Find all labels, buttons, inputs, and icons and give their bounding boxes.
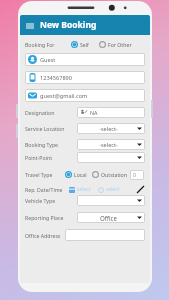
button[interactable]: -select- [77, 123, 145, 134]
staticText: Service Location [25, 125, 77, 132]
button[interactable]: Outstation [92, 171, 127, 178]
button[interactable]: NA [77, 107, 145, 118]
button[interactable]: Edit [136, 185, 145, 194]
staticText: 0 [133, 172, 136, 179]
staticText: Self [80, 41, 89, 48]
staticText: Office [80, 214, 137, 222]
button[interactable]: select [98, 186, 120, 193]
staticText: Booking Type [25, 141, 77, 148]
staticText: Reporting Place [25, 214, 77, 221]
staticText: Point-Point [25, 154, 77, 161]
staticText: Guest [40, 56, 56, 64]
button[interactable]: Local [65, 171, 87, 178]
button[interactable] [77, 195, 145, 206]
staticText: Local [74, 171, 87, 178]
button[interactable]: Office [77, 212, 145, 223]
button[interactable] [77, 152, 145, 163]
button[interactable]: -select- [77, 139, 145, 150]
staticText: Travel Type [25, 171, 65, 178]
staticText: Outstation [101, 171, 127, 178]
button[interactable] [65, 229, 145, 241]
button[interactable]: 1234567890 [25, 71, 145, 84]
staticText: Booking For [25, 41, 71, 48]
staticText: select [77, 186, 91, 193]
staticText: guest@gmail.com [40, 92, 88, 100]
button[interactable]: For Other [99, 41, 132, 48]
staticText: -select- [80, 141, 137, 149]
staticText: Rep. Date/Time [25, 186, 69, 193]
button[interactable]: select [69, 186, 91, 193]
staticText: NA [90, 109, 98, 116]
staticText: For Other [108, 41, 132, 48]
button[interactable]: 0 [130, 170, 144, 180]
staticText: New Booking [40, 19, 97, 31]
staticText: 1234567890 [40, 74, 72, 82]
button[interactable]: Guest [25, 53, 145, 66]
button[interactable]: Menu [20, 15, 150, 35]
staticText: select [106, 186, 120, 193]
staticText: Vehicle Type [25, 197, 77, 204]
staticText: Office Address [25, 232, 65, 239]
button[interactable]: Menu [25, 21, 34, 30]
button[interactable]: Self [71, 41, 89, 48]
staticText: Designation [25, 109, 77, 116]
staticText: -select- [80, 125, 137, 133]
button[interactable]: guest@gmail.com [25, 89, 145, 102]
